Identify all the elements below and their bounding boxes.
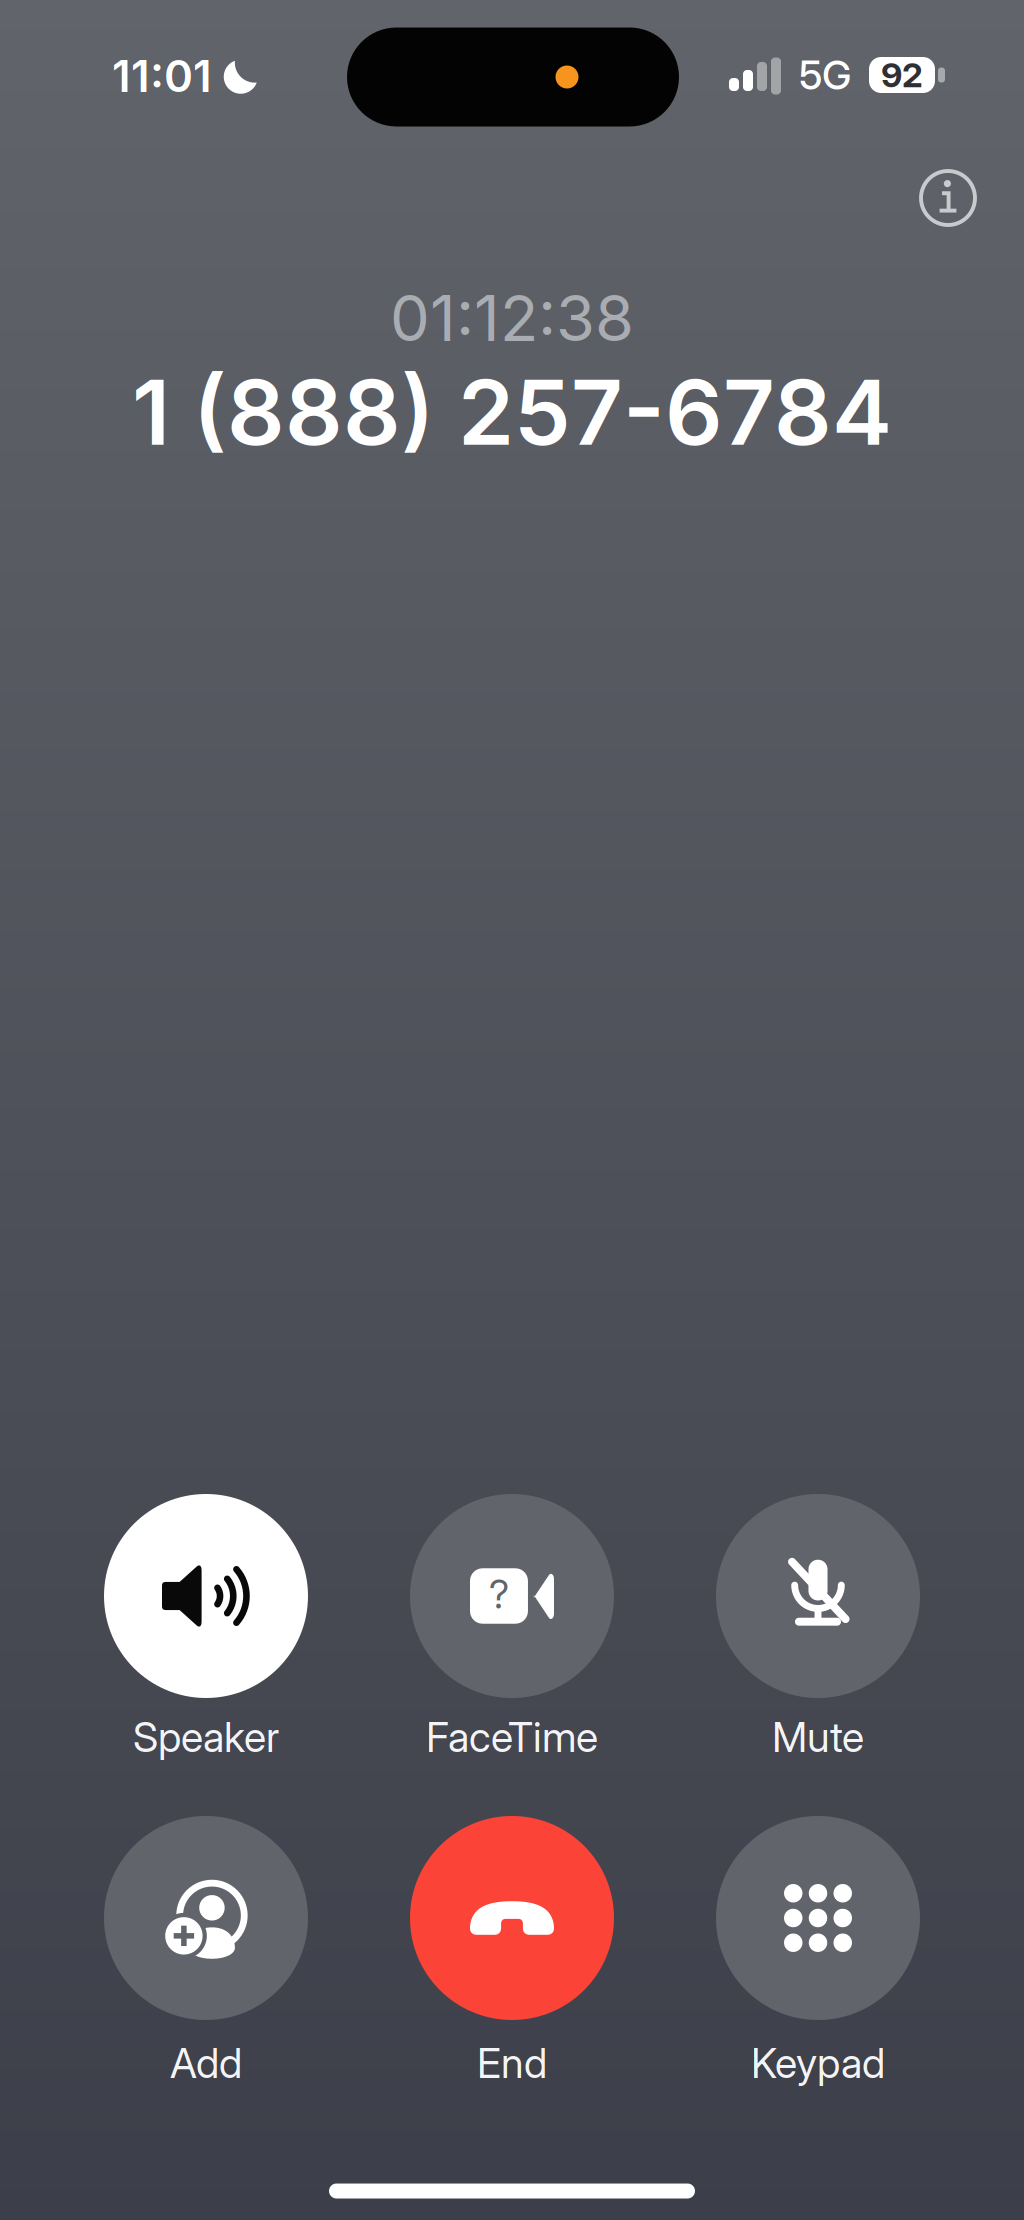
staticText: 1 (888) 257-6784 — [132, 358, 892, 466]
button[interactable]: ? — [367, 1494, 657, 1765]
staticText: Keypad — [751, 2038, 885, 2088]
staticText: 92 — [881, 54, 923, 95]
button[interactable]: Speaker — [61, 1494, 351, 1765]
button[interactable]: Mute — [673, 1494, 963, 1765]
button[interactable]: Call details — [898, 148, 998, 248]
staticText: 5G — [799, 51, 851, 99]
staticText: FaceTime — [426, 1712, 598, 1762]
button[interactable]: End — [367, 1816, 657, 2091]
button[interactable]: Keypad — [673, 1816, 963, 2091]
button[interactable]: Add — [61, 1816, 351, 2091]
staticText: 11:01 — [112, 49, 212, 103]
staticText: 01:12:38 — [390, 280, 634, 356]
staticText: Mute — [772, 1712, 864, 1762]
staticText: Add — [170, 2038, 242, 2088]
staticText: ? — [489, 1571, 509, 1618]
staticText: End — [477, 2038, 547, 2088]
staticText: Speaker — [133, 1712, 279, 1762]
